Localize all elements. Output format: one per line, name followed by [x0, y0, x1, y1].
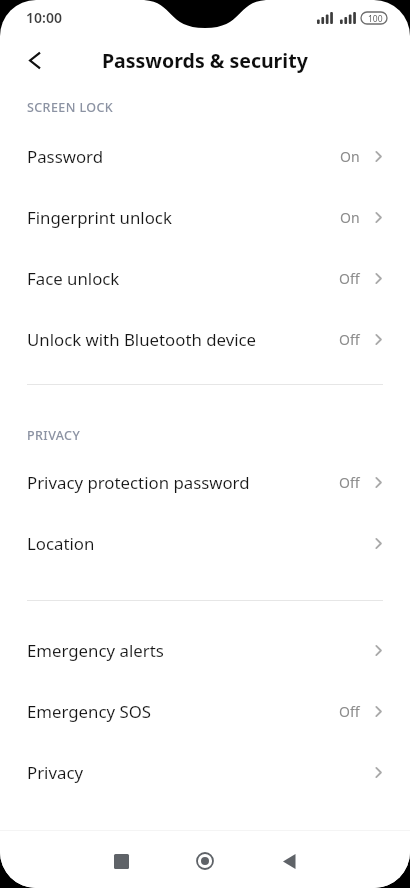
button[interactable]	[93, 834, 149, 888]
button[interactable]	[177, 834, 233, 888]
staticText: Emergency alerts	[27, 639, 164, 662]
button[interactable]: Emergency alerts	[0, 620, 410, 681]
button[interactable]: Privacy protection password	[0, 452, 410, 513]
button[interactable]	[261, 834, 317, 888]
button[interactable]: Emergency SOS	[0, 681, 410, 742]
staticText: On	[340, 208, 360, 227]
staticText: PRIVACY	[27, 427, 81, 444]
staticText: Location	[27, 532, 95, 555]
button[interactable]: Location	[0, 513, 410, 574]
staticText: Off	[339, 702, 360, 721]
staticText: Privacy protection password	[27, 471, 250, 494]
staticText: Off	[339, 473, 360, 492]
staticText: SCREEN LOCK	[27, 99, 114, 116]
button[interactable]: Face unlock	[0, 248, 410, 309]
staticText: On	[340, 147, 360, 166]
button[interactable]: Fingerprint unlock	[0, 187, 410, 248]
staticText: 100	[368, 13, 383, 25]
staticText: Emergency SOS	[27, 700, 152, 723]
staticText: Off	[339, 330, 360, 349]
staticText: 10:00	[26, 8, 62, 27]
button[interactable]: Privacy	[0, 742, 410, 803]
staticText: Passwords & security	[102, 47, 308, 74]
button[interactable]: Password	[0, 126, 410, 187]
staticText: Privacy	[27, 761, 84, 784]
button[interactable]: Unlock with Bluetooth device	[0, 309, 410, 370]
staticText: Face unlock	[27, 267, 120, 290]
staticText: Unlock with Bluetooth device	[27, 328, 257, 351]
button[interactable]	[17, 43, 51, 77]
staticText: Password	[27, 145, 103, 168]
staticText: Off	[339, 269, 360, 288]
staticText: Fingerprint unlock	[27, 206, 172, 229]
